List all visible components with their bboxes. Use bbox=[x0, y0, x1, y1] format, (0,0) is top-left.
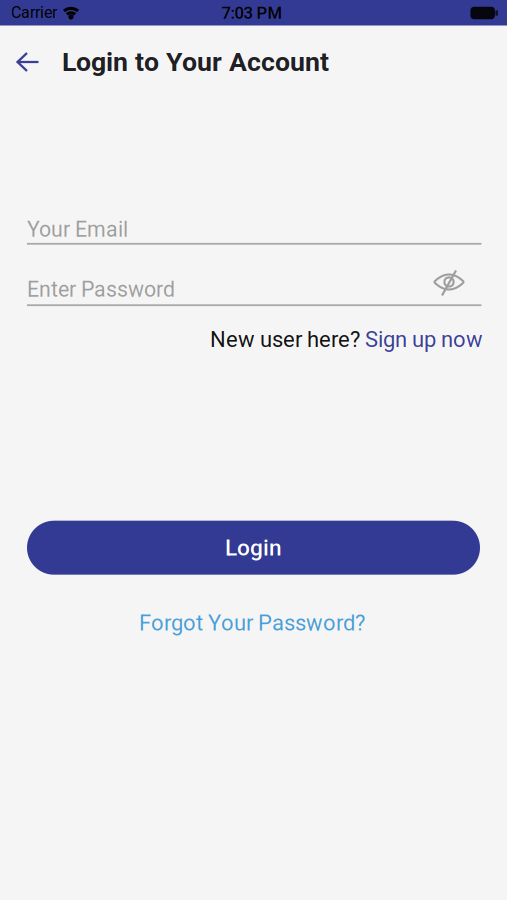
button[interactable]: Show password bbox=[433, 270, 465, 296]
staticText: Forgot Your Password? bbox=[139, 610, 365, 636]
button[interactable]: Login bbox=[27, 521, 480, 575]
staticText: Carrier bbox=[11, 3, 57, 22]
staticText: 7:03 PM bbox=[221, 3, 282, 23]
staticText: Login to Your Account bbox=[62, 46, 329, 78]
staticText: Enter Password bbox=[27, 277, 175, 302]
button[interactable]: Back bbox=[17, 52, 39, 71]
button[interactable]: Forgot Your Password? bbox=[139, 610, 365, 636]
staticText: Login bbox=[225, 534, 282, 561]
staticText: New user here? bbox=[210, 327, 365, 352]
button[interactable]: Sign up now bbox=[365, 327, 483, 352]
staticText: Sign up now bbox=[365, 327, 483, 352]
staticText: Your Email bbox=[27, 217, 128, 242]
